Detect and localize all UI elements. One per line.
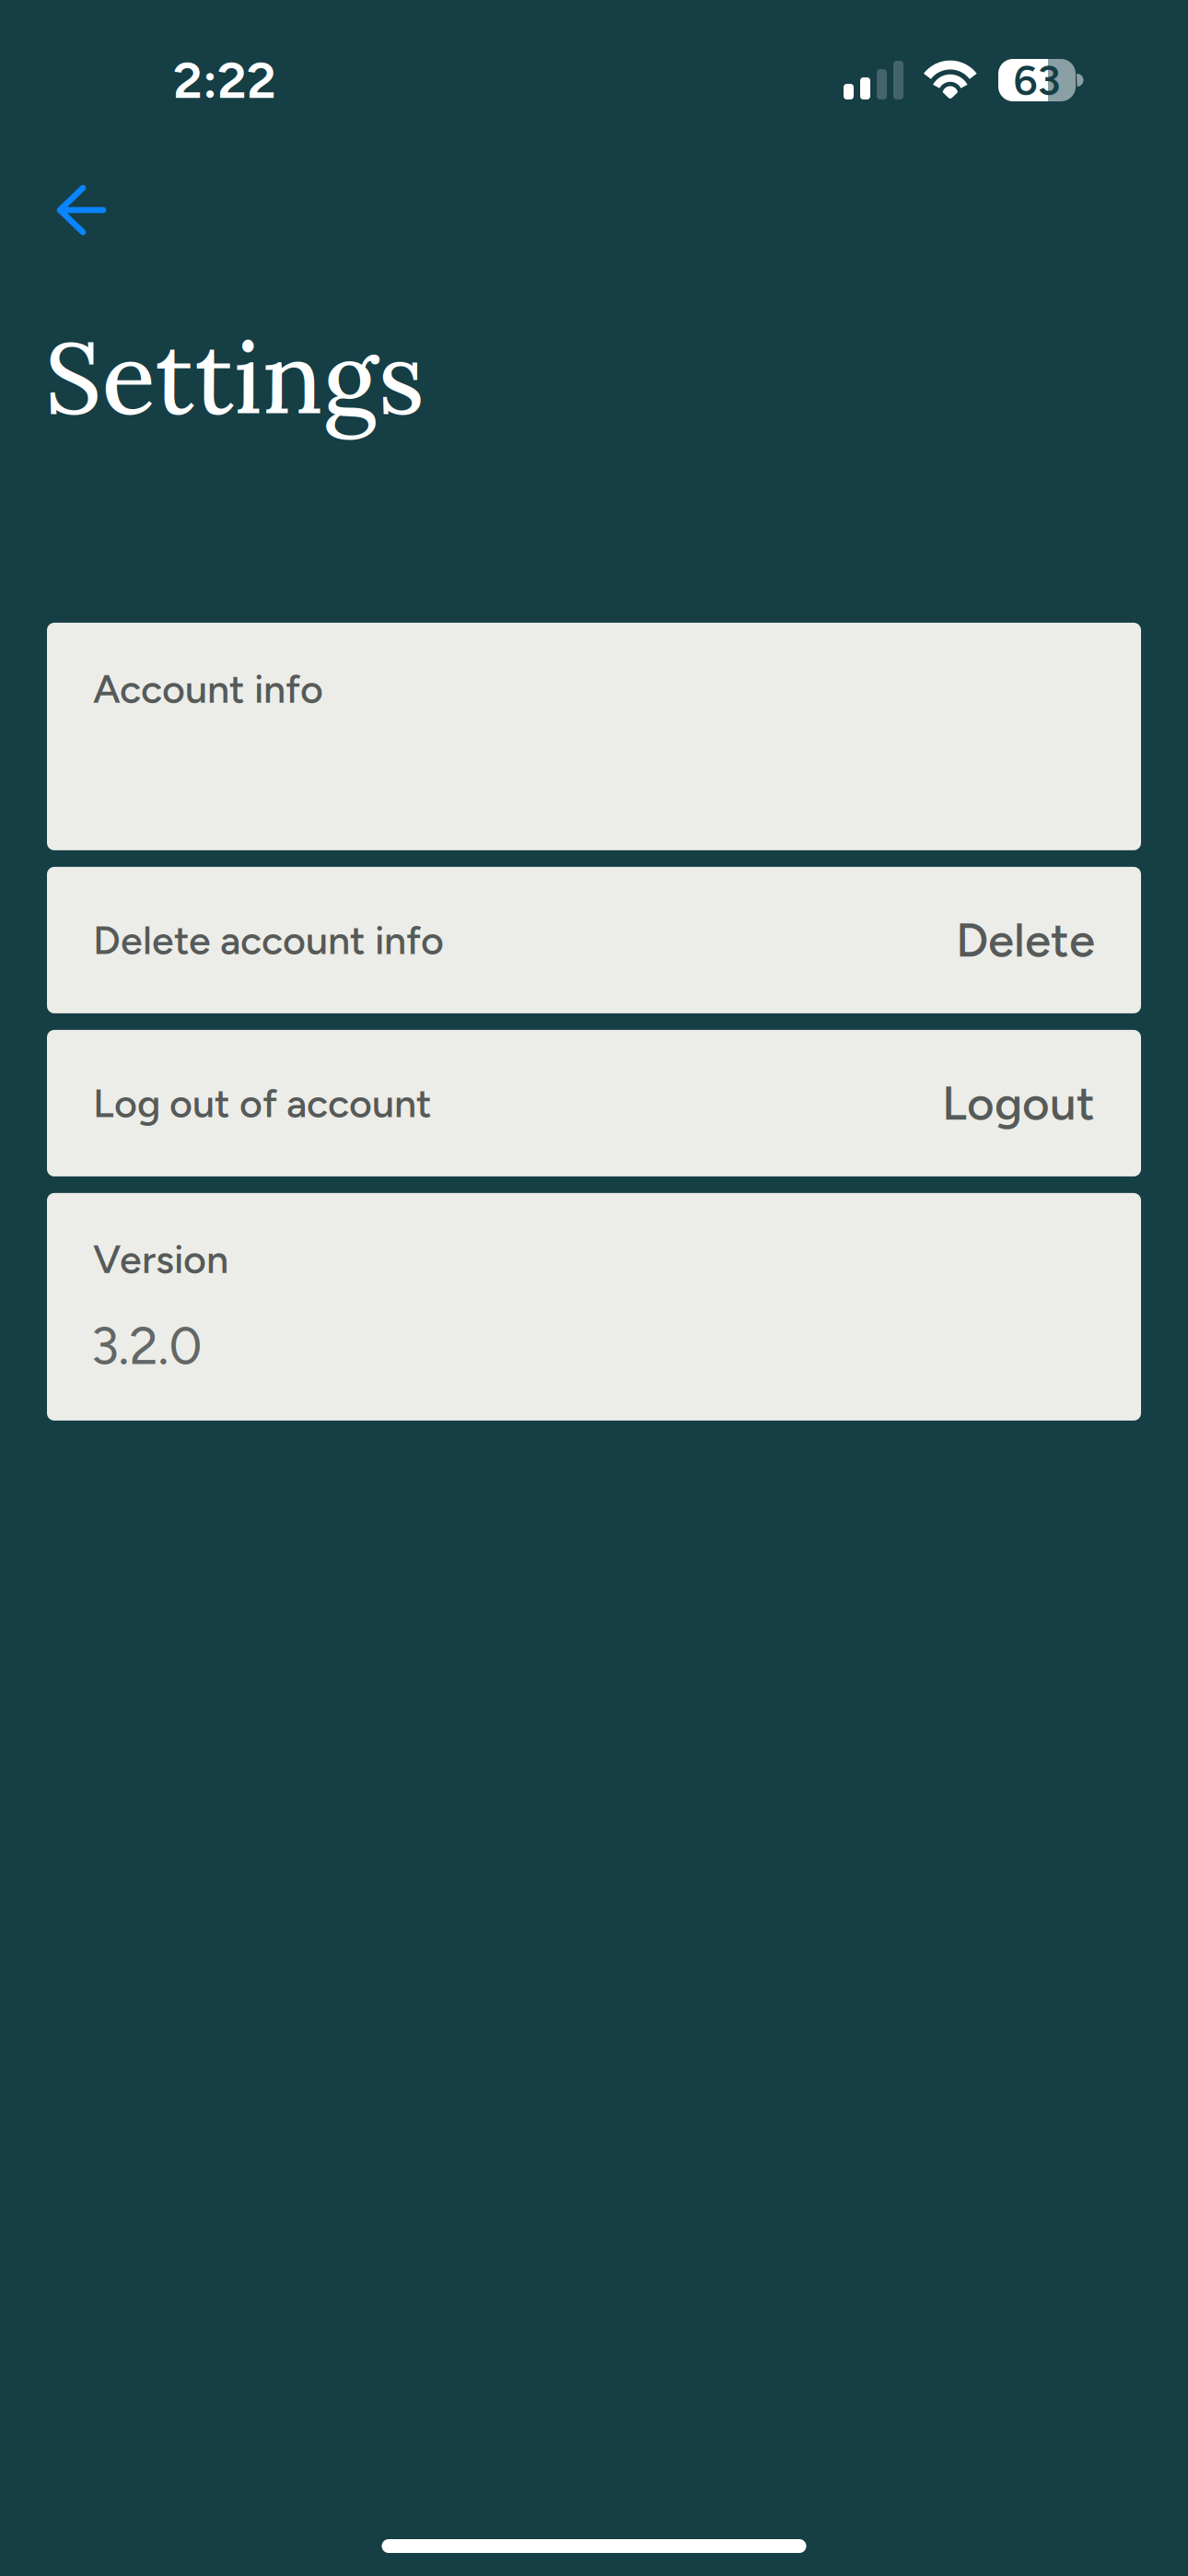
staticText: Account info xyxy=(93,665,323,713)
staticText: Logout xyxy=(942,1075,1095,1131)
staticText: Delete xyxy=(956,912,1095,968)
button[interactable]: Account info xyxy=(47,623,1141,850)
staticText: 3.2.0 xyxy=(91,1315,202,1377)
button[interactable]: Delete account info xyxy=(47,867,1141,1013)
button[interactable]: Log out of account xyxy=(47,1030,1141,1176)
staticText: Log out of account xyxy=(93,1079,432,1127)
staticText: Delete account info xyxy=(93,916,444,964)
button[interactable]: Back xyxy=(0,185,1120,235)
staticText: Settings xyxy=(45,313,424,440)
staticText: 2:22 xyxy=(173,50,276,111)
staticText: Version xyxy=(93,1235,228,1283)
staticText: 63 xyxy=(1013,55,1060,105)
